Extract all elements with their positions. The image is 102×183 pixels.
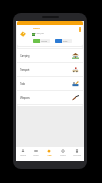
staticText: Tasks <box>60 154 66 157</box>
staticText: Weapons <box>20 96 30 100</box>
staticText: Account <box>73 154 81 157</box>
button[interactable]: Camping <box>17 49 83 62</box>
staticText: Stock <box>33 154 39 157</box>
staticText: Sale <box>47 154 52 157</box>
staticText: Camping <box>20 54 30 58</box>
button[interactable]: Active <box>33 39 50 43</box>
button[interactable]: Weapons <box>17 91 83 104</box>
button[interactable]: More options <box>76 25 83 33</box>
button[interactable]: Account <box>70 147 84 161</box>
staticText: € 249,00 <box>35 32 44 35</box>
button[interactable]: Tasks <box>56 147 70 161</box>
staticText: Active <box>41 40 47 43</box>
staticText: Home <box>20 154 26 157</box>
button[interactable]: Sale <box>42 147 56 161</box>
staticText: Paid <box>63 40 68 43</box>
staticText: Transport <box>20 68 30 72</box>
staticText: Guest <box>33 26 40 29</box>
staticText: Tools <box>20 82 25 86</box>
button[interactable]: Stock <box>29 147 42 161</box>
button[interactable]: Tools <box>17 77 83 90</box>
button[interactable]: Transport <box>17 63 83 76</box>
button[interactable]: Paid <box>55 39 72 43</box>
button[interactable]: Home <box>16 147 29 161</box>
